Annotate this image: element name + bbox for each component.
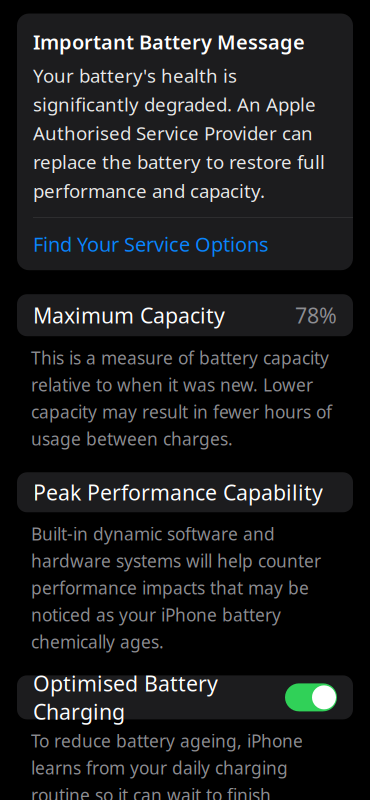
button[interactable]: Optimised Battery Charging (17, 675, 353, 719)
button[interactable]: Find Your Service Options (17, 218, 353, 270)
button[interactable]: Peak Performance Capability (17, 472, 353, 512)
staticText: This is a measure of battery capacity re… (31, 346, 332, 450)
button[interactable]: Maximum Capacity (17, 294, 353, 336)
staticText: Built-in dynamic software and hardware s… (31, 522, 321, 653)
staticText: Optimised Battery Charging (33, 669, 218, 726)
staticText: Peak Performance Capability (33, 478, 323, 506)
staticText: Maximum Capacity (33, 301, 225, 329)
staticText: Your battery's health is significantly d… (33, 63, 325, 203)
staticText: Important Battery Message (33, 28, 305, 55)
staticText: To reduce battery ageing, iPhone learns … (31, 729, 327, 800)
staticText: 78% (295, 301, 337, 329)
staticText: Find Your Service Options (33, 231, 269, 257)
